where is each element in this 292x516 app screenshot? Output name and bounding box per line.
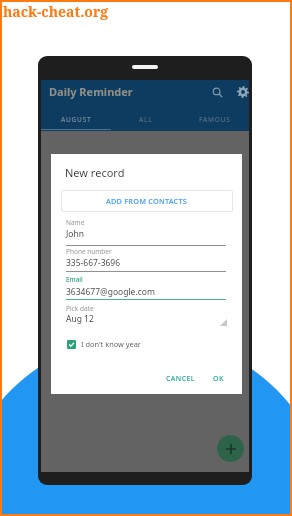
staticText: FAMOUS — [199, 115, 231, 124]
button[interactable]: AUGUST — [41, 108, 111, 130]
staticText: 3634677@google.com — [66, 286, 155, 298]
staticText: Aug 12 — [66, 313, 94, 325]
staticText: Phone number — [66, 247, 112, 256]
staticText: Email — [66, 275, 83, 284]
staticText: Daily Reminder — [49, 84, 133, 99]
staticText: I don't know year — [81, 339, 141, 349]
button[interactable]: FAMOUS — [180, 108, 249, 130]
staticText: 335-667-3696 — [66, 257, 121, 269]
staticText: ALL — [139, 115, 153, 124]
staticText: CANCEL — [166, 374, 195, 384]
button[interactable]: Settings — [232, 81, 252, 103]
staticText: John — [66, 228, 84, 240]
staticText: Name — [66, 218, 85, 227]
button[interactable]: ADD FROM CONTACTS — [61, 190, 233, 212]
staticText: New record — [65, 165, 125, 180]
staticText: ADD FROM CONTACTS — [106, 196, 188, 206]
staticText: OK — [213, 374, 224, 384]
button[interactable]: Search — [206, 81, 228, 103]
staticText: hack-cheat.org — [3, 2, 109, 21]
button[interactable]: OK — [209, 371, 228, 387]
button[interactable]: I don't know year — [67, 339, 141, 349]
staticText: Pick date — [66, 304, 94, 313]
staticText: AUGUST — [61, 115, 92, 124]
button[interactable]: Add new record — [217, 435, 244, 462]
button[interactable]: ALL — [111, 108, 180, 130]
button[interactable]: CANCEL — [162, 371, 199, 387]
